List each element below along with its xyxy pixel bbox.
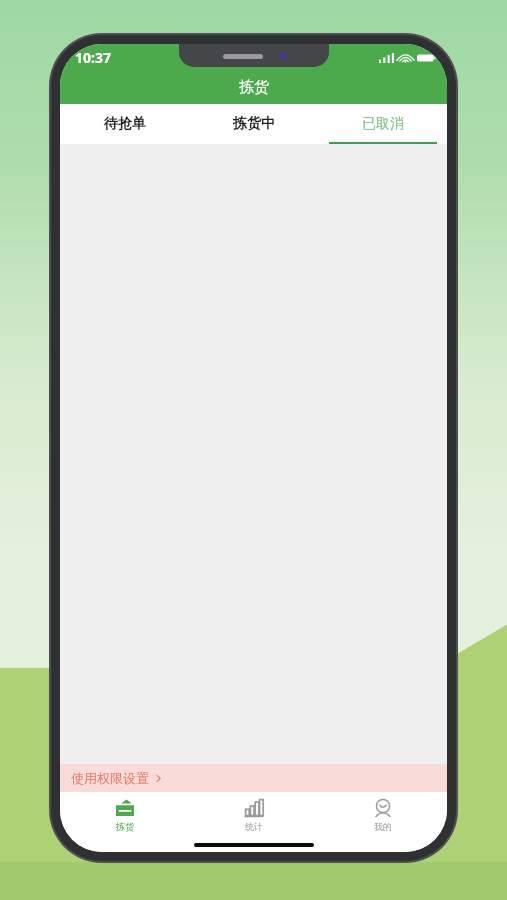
- button[interactable]: 使用权限设置: [60, 764, 447, 792]
- staticText: 拣货: [116, 821, 134, 832]
- button[interactable]: 拣货中: [189, 104, 318, 144]
- staticText: 统计: [245, 821, 263, 832]
- staticText: 已取消: [362, 115, 404, 133]
- button[interactable]: 已取消: [318, 104, 447, 144]
- button[interactable]: 待抢单: [60, 104, 189, 144]
- staticText: 我的: [374, 821, 392, 832]
- staticText: 使用权限设置: [71, 770, 149, 786]
- button[interactable]: 统计: [189, 792, 318, 837]
- staticText: 拣货: [239, 78, 269, 97]
- staticText: 拣货中: [233, 115, 275, 133]
- staticText: 待抢单: [104, 115, 146, 133]
- button[interactable]: 拣货: [60, 792, 189, 837]
- button[interactable]: 我的: [318, 792, 447, 837]
- staticText: 10:37: [75, 48, 111, 67]
